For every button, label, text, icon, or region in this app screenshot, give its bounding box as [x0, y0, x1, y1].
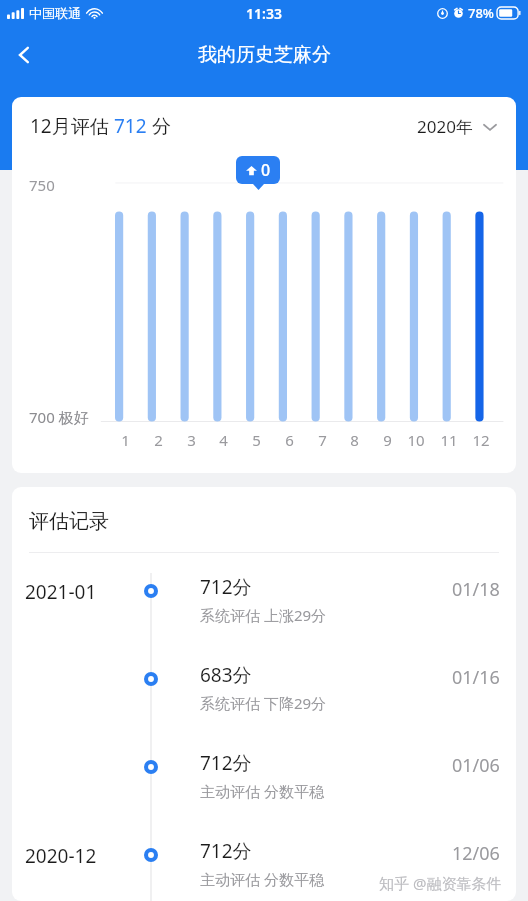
staticText: 12月评估	[30, 113, 114, 139]
staticText: 683分	[200, 662, 252, 688]
staticText: 分	[147, 113, 171, 139]
staticText: 11	[440, 430, 458, 450]
staticText: 5	[252, 430, 261, 450]
staticText: 700 极好	[29, 407, 89, 427]
staticText: 3	[187, 430, 196, 450]
staticText: 2021-01	[25, 579, 97, 605]
staticText: 11:33	[246, 4, 282, 23]
staticText: 10	[407, 430, 425, 450]
staticText: 01/06	[452, 753, 500, 778]
staticText: 我的历史芝麻分	[198, 43, 331, 67]
staticText: 系统评估 下降29分	[200, 693, 327, 713]
staticText: 7	[318, 430, 327, 450]
staticText: 中国联通	[29, 5, 81, 21]
staticText: 712分	[200, 750, 252, 776]
staticText: 2	[154, 430, 163, 450]
staticText: 2020年	[417, 115, 473, 138]
staticText: 78%	[468, 4, 494, 22]
staticText: 4	[219, 430, 228, 450]
staticText: 主动评估 分数平稳	[200, 781, 324, 801]
staticText: 系统评估 上涨29分	[200, 605, 327, 625]
staticText: 6	[285, 430, 294, 450]
staticText: 712分	[200, 574, 252, 600]
staticText: 0	[261, 159, 271, 181]
button[interactable]: 2021-01	[12, 553, 516, 641]
button[interactable]: Back	[0, 31, 48, 79]
button[interactable]: 2020-12	[12, 817, 516, 901]
button[interactable]: 2020年	[415, 109, 500, 144]
staticText: 知乎 @融资靠条件	[379, 873, 502, 893]
staticText: 01/18	[452, 577, 500, 602]
staticText: 01/16	[452, 665, 500, 690]
staticText: 8	[350, 430, 359, 450]
staticText: 12/06	[452, 841, 500, 866]
staticText: 9	[383, 430, 392, 450]
staticText: 712分	[200, 838, 252, 864]
staticText: 主动评估 分数平稳	[200, 869, 324, 889]
button[interactable]: 712分	[12, 729, 516, 817]
staticText: 12	[472, 430, 490, 450]
staticText: 712	[114, 113, 147, 139]
staticText: 评估记录	[29, 509, 109, 534]
staticText: 2020-12	[25, 843, 97, 869]
staticText: 1	[121, 430, 130, 450]
button[interactable]: 683分	[12, 641, 516, 729]
staticText: 750	[29, 175, 55, 195]
